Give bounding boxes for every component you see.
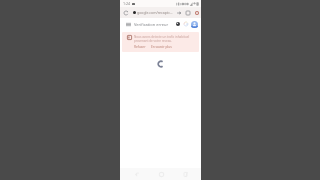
button[interactable]: google.com/recaptcha/api2 (130, 10, 174, 15)
button[interactable]: More options (192, 8, 201, 17)
staticText: 1:24 (123, 1, 131, 6)
staticText: google.com/recaptcha/api2 (137, 10, 174, 15)
button[interactable]: Menu (124, 20, 132, 28)
button[interactable]: Google (182, 20, 190, 28)
staticText: En savoir plus (151, 45, 172, 49)
staticText: Nous avons detecte un trafic inhabituel … (134, 35, 196, 43)
button[interactable]: Tabs (183, 8, 192, 17)
staticText: Refuser (134, 45, 146, 49)
staticText: Verification erreur (134, 22, 169, 27)
button[interactable]: Forward (174, 8, 183, 17)
button[interactable]: Help (174, 20, 182, 28)
button[interactable]: Account (190, 20, 199, 29)
button[interactable]: En savoir plus (151, 45, 172, 49)
button[interactable]: Reload (121, 8, 130, 17)
button[interactable]: Refuser (134, 45, 146, 49)
